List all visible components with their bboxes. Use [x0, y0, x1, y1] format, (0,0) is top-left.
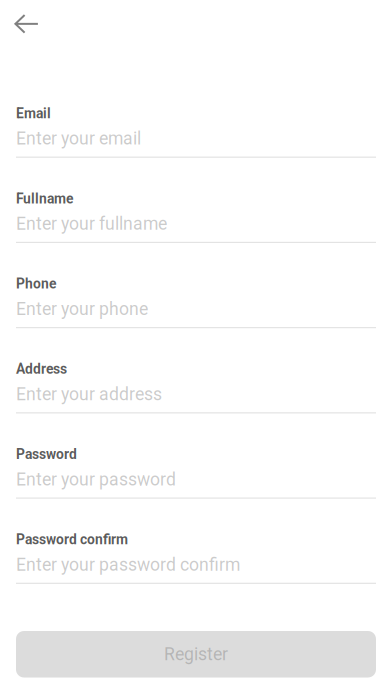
staticText: Fullname — [16, 190, 73, 207]
staticText: Enter your fullname — [16, 213, 167, 234]
button[interactable]: Back — [0, 0, 52, 47]
staticText: Register — [164, 644, 228, 664]
staticText: Phone — [16, 276, 56, 292]
button[interactable]: Password — [16, 446, 376, 499]
staticText: Password confirm — [16, 531, 128, 548]
button[interactable]: Fullname — [16, 190, 376, 243]
button[interactable]: Password confirm — [16, 531, 376, 584]
staticText: Email — [16, 105, 51, 122]
button[interactable]: Email — [16, 105, 376, 158]
staticText: Password — [16, 446, 77, 462]
button[interactable]: Phone — [16, 276, 376, 328]
button[interactable]: Address — [16, 361, 376, 413]
staticText: Enter your address — [16, 384, 162, 404]
staticText: Enter your password confirm — [16, 554, 240, 575]
staticText: Address — [16, 361, 67, 377]
button[interactable]: Register — [16, 631, 376, 677]
staticText: Enter your email — [16, 128, 141, 149]
staticText: Enter your password — [16, 469, 176, 490]
staticText: Enter your phone — [16, 299, 148, 319]
